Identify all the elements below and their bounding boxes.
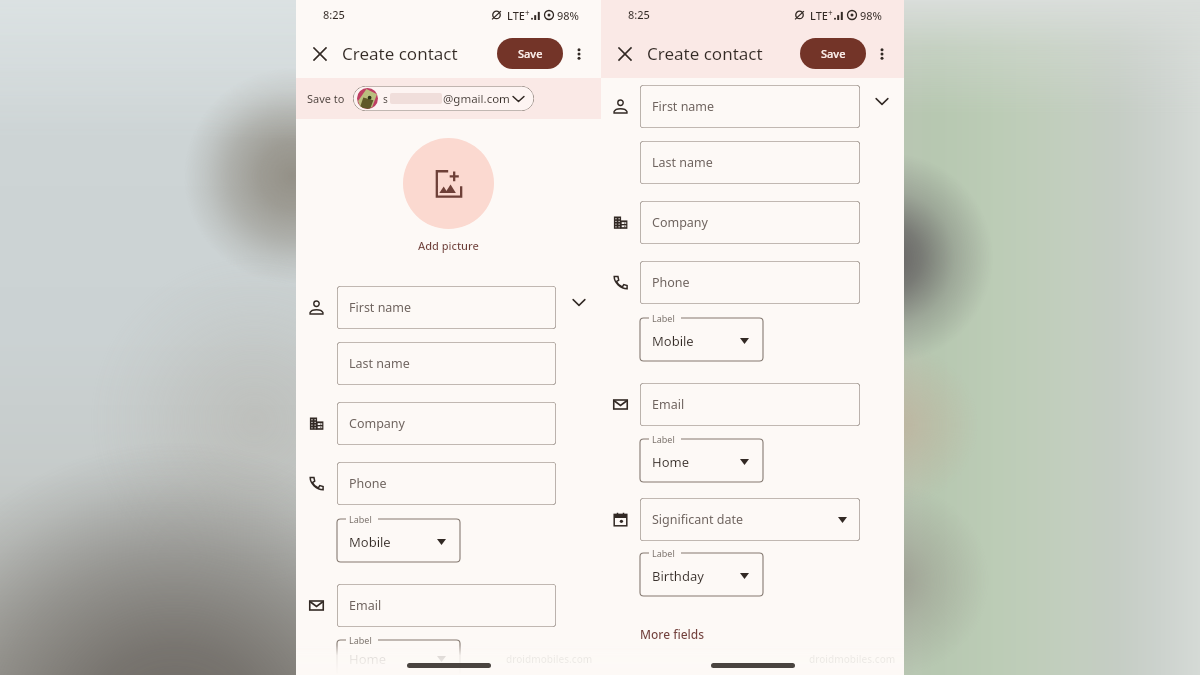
staticText: Label [349,513,372,525]
staticText: 98% [557,8,579,23]
staticText: Label [349,634,372,646]
staticText: Email [652,396,685,413]
other: Phone [309,476,324,491]
staticText: Email [349,597,382,614]
staticText: @gmail.com [443,91,510,107]
button[interactable]: Save [497,38,563,69]
button[interactable]: Email [640,383,860,426]
staticText: Mobile [652,332,694,350]
button[interactable]: Significant date [640,498,860,541]
staticText: LTE [507,8,525,23]
button[interactable]: More options [869,41,895,67]
button[interactable]: More options [566,41,592,67]
other: Name [613,99,628,114]
other: Phone [613,275,628,290]
button[interactable]: Save [800,38,866,69]
other: Name [309,300,324,315]
staticText: droidmobiles.com [506,652,593,666]
staticText: Add picture [418,238,479,253]
button[interactable]: s [353,86,534,111]
staticText: droidmobiles.com [809,652,896,666]
staticText: Last name [652,154,713,171]
staticText: More fields [640,626,705,642]
staticText: Create contact [647,42,763,65]
staticText: Save to [307,91,345,106]
button[interactable]: Expand name fields [871,90,893,112]
staticText: 98% [860,8,882,23]
staticText: Save [518,46,543,61]
staticText: + [525,7,530,18]
button[interactable]: Company [640,201,860,244]
staticText: s [383,92,388,106]
other: Email [613,397,628,412]
staticText: Phone [652,274,690,291]
other: Significant date [613,512,628,527]
button[interactable]: First name [337,286,556,329]
button[interactable]: Close [305,39,335,69]
staticText: Label [652,433,675,445]
staticText: Label [652,312,675,324]
button[interactable]: Company [337,402,556,445]
button[interactable]: Expand name fields [568,291,590,313]
other: Company [613,215,628,230]
button[interactable]: Close [610,39,640,69]
staticText: 8:25 [628,7,650,22]
button[interactable]: More fields [640,626,705,642]
staticText: First name [349,299,412,316]
staticText: Home [349,650,386,668]
staticText: Label [652,547,675,559]
staticText: First name [652,98,715,115]
staticText: 8:25 [323,7,345,22]
button[interactable]: Last name [337,342,556,385]
button[interactable]: Last name [640,141,860,184]
other: Company [309,416,324,431]
staticText: Last name [349,355,410,372]
staticText: Save [821,46,846,61]
staticText: + [828,7,833,18]
button[interactable]: Phone [337,462,556,505]
staticText: LTE [810,8,828,23]
button[interactable]: Add picture [403,138,494,229]
other: Email [309,598,324,613]
staticText: Phone [349,475,387,492]
staticText: Home [652,453,689,471]
button[interactable]: Email [337,584,556,627]
staticText: Company [652,214,708,231]
button[interactable]: First name [640,85,860,128]
button[interactable]: Phone [640,261,860,304]
staticText: Mobile [349,533,391,551]
staticText: Significant date [652,511,744,528]
staticText: Birthday [652,567,704,585]
staticText: Create contact [342,42,458,65]
staticText: Company [349,415,405,432]
